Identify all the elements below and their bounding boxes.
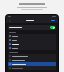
- button[interactable]: [8, 46, 56, 50]
- button[interactable]: [8, 42, 56, 46]
- button[interactable]: [8, 54, 56, 58]
- button[interactable]: Toggle: [8, 25, 56, 30]
- button[interactable]: Toggle: [50, 26, 55, 29]
- button[interactable]: [8, 38, 56, 42]
- button[interactable]: [8, 58, 56, 62]
- button[interactable]: [8, 66, 56, 70]
- button[interactable]: Back: [8, 19, 11, 22]
- button[interactable]: [8, 34, 56, 38]
- button[interactable]: [50, 19, 56, 22]
- button[interactable]: [8, 62, 56, 66]
